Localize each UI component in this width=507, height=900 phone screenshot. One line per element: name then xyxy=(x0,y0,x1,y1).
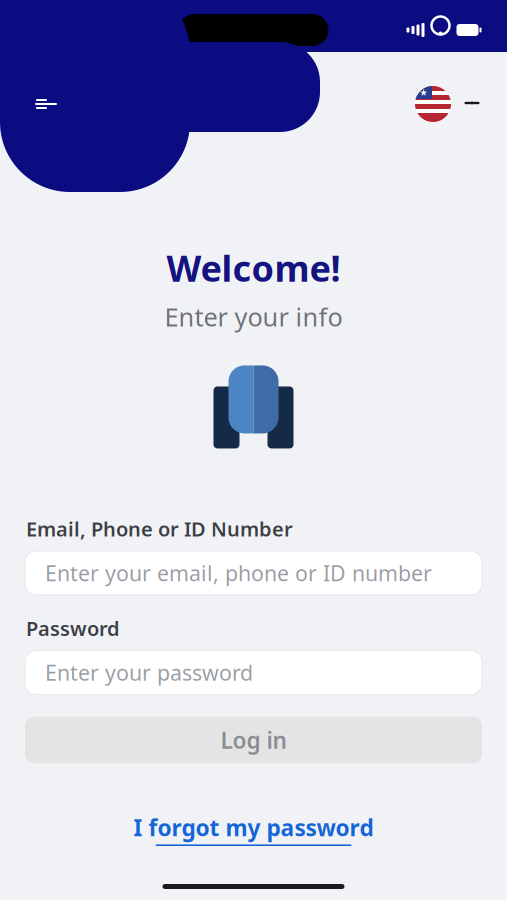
staticText: Email, Phone or ID Number xyxy=(26,515,293,542)
staticText: Enter your email, phone or ID number xyxy=(45,559,432,587)
button[interactable]: Select language xyxy=(409,82,487,126)
staticText: Log in xyxy=(220,725,286,755)
staticText: Password xyxy=(26,615,120,642)
staticText: Welcome! xyxy=(166,244,340,292)
button[interactable]: Back xyxy=(20,82,72,126)
button[interactable]: Enter your email, phone or ID number xyxy=(25,551,482,595)
button[interactable]: I forgot my password xyxy=(121,806,385,852)
staticText: ★ xyxy=(419,87,427,98)
staticText: I forgot my password xyxy=(133,812,373,842)
staticText: Enter your info xyxy=(164,300,342,333)
button[interactable]: Enter your password xyxy=(25,651,482,695)
staticText: Enter your password xyxy=(45,658,253,687)
button[interactable]: Log in xyxy=(25,717,482,764)
